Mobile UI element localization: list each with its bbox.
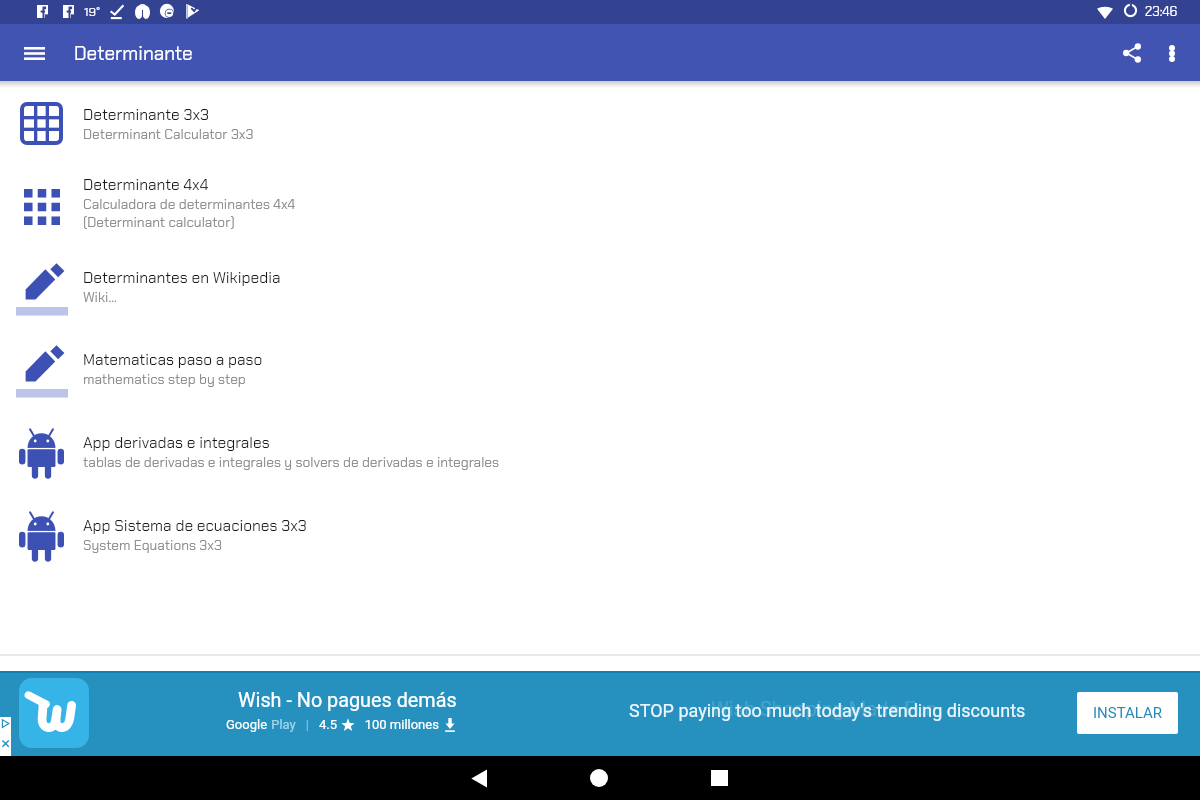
button[interactable]: Back [419,756,539,800]
button[interactable]: Wish - No pagues demás [0,671,1200,756]
staticText: Matematicas paso a paso [83,350,263,370]
staticText: Calculadora de determinantes 4x4 [83,195,296,213]
button[interactable]: Home [539,756,659,800]
staticText: Google [226,717,268,732]
staticText: 23:46 [1145,3,1178,20]
staticText: System Equations 3x3 [83,536,222,554]
staticText: 100 millones [355,717,443,732]
staticText: tablas de derivadas e integrales y solve… [83,453,500,471]
staticText: App derivadas e integrales [83,433,270,453]
button[interactable]: Share [1108,29,1156,77]
staticText: mathematics step by step [83,370,246,388]
staticText: 19° [84,4,101,20]
button[interactable]: Determinante 3x3 [0,87,1200,160]
staticText: Determinante 3x3 [83,105,210,125]
staticText: Determinante 4x4 [83,175,209,195]
button[interactable]: App Sistema de ecuaciones 3x3 [0,493,1200,576]
staticText: | [296,717,319,732]
button[interactable]: Open navigation menu [12,31,56,75]
staticText: (Determinant calculator) [83,213,235,231]
staticText: Determinante [74,41,193,66]
staticText: Determinant Calculator 3x3 [83,125,254,143]
button[interactable]: Determinantes en Wikipedia [0,246,1200,328]
staticText: STOP paying too much today's trending di… [629,700,1026,721]
button[interactable]: Matematicas paso a paso [0,328,1200,410]
staticText: Wiki... [83,288,117,306]
staticText: Play [268,717,296,732]
staticText: Wish Shopping Made Fun [711,697,937,720]
staticText: INSTALAR [1093,704,1163,722]
staticText: App Sistema de ecuaciones 3x3 [83,516,307,536]
button[interactable]: Recent apps [659,756,779,800]
button[interactable]: App derivadas e integrales [0,410,1200,493]
staticText: 4.5 [319,717,341,732]
staticText: Determinantes en Wikipedia [83,268,281,288]
staticText: Wish - No pagues demás [238,689,457,712]
button[interactable]: Determinante 4x4 [0,160,1200,246]
button[interactable]: INSTALAR [1077,692,1178,734]
button[interactable]: More options [1152,33,1192,73]
